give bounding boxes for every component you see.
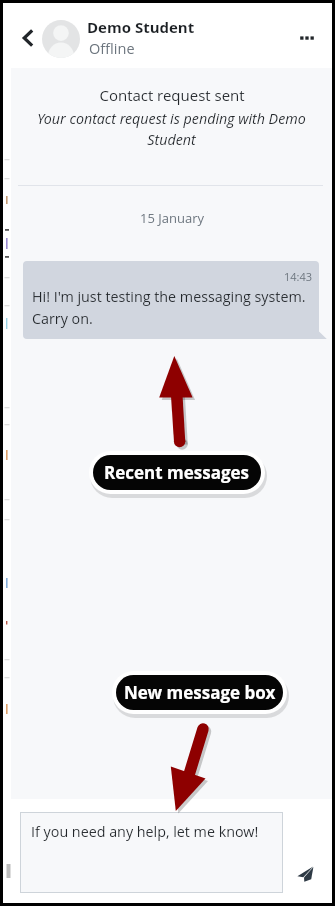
button[interactable]: Recent messages — [93, 455, 261, 490]
staticText: Offline — [89, 39, 135, 59]
staticText: 15 January — [140, 209, 204, 227]
button[interactable]: New message box — [116, 675, 283, 710]
staticText: Your contact request is pending with Dem… — [27, 109, 316, 149]
staticText: Hi! I'm just testing the messaging syste… — [32, 287, 312, 328]
button[interactable]: 14:43 — [23, 261, 319, 339]
button[interactable]: Back — [13, 24, 41, 52]
button[interactable]: Send — [290, 859, 321, 890]
staticText: If you need any help, let me know! — [31, 822, 259, 841]
staticText: Demo Student — [87, 17, 195, 37]
button[interactable]: More options — [293, 24, 321, 52]
staticText: Recent messages — [104, 461, 250, 484]
staticText: 14:43 — [32, 269, 312, 284]
staticText: New message box — [124, 681, 276, 704]
staticText: Contact request sent — [99, 85, 245, 105]
button[interactable]: If you need any help, let me know! — [21, 813, 282, 892]
